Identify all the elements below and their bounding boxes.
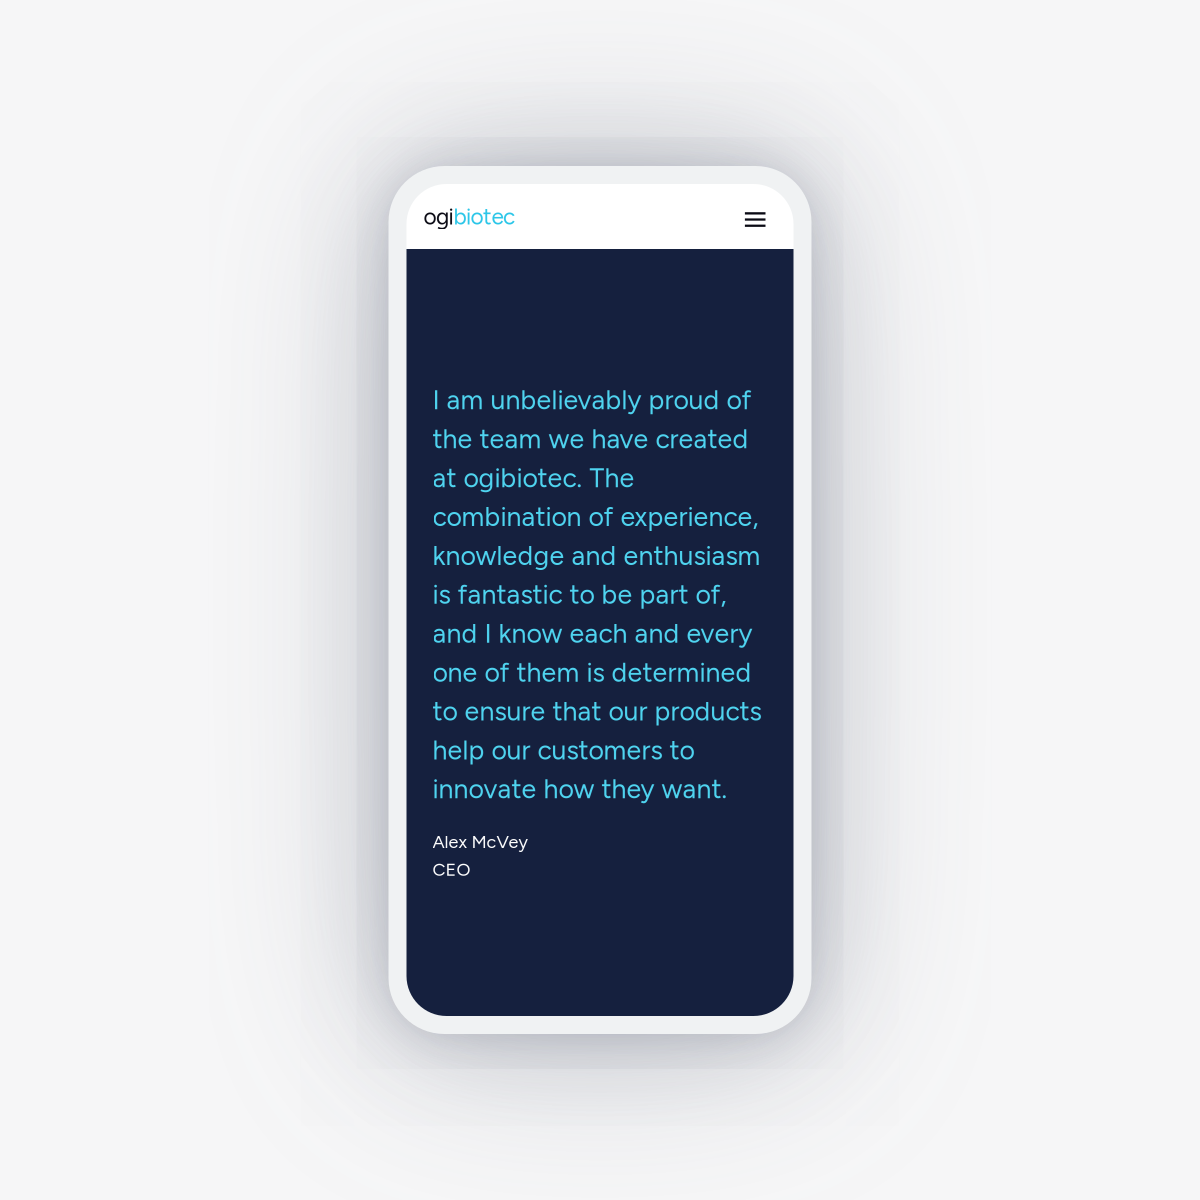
button[interactable]: Menu [739, 203, 771, 230]
staticText: ogi [423, 203, 453, 230]
staticText: Alex McVey [432, 831, 527, 853]
staticText: CEO [432, 859, 470, 880]
staticText: biotec [453, 203, 515, 230]
staticText: I am unbelievably proud of the team we h… [432, 384, 761, 805]
button[interactable]: ogi [423, 197, 515, 236]
